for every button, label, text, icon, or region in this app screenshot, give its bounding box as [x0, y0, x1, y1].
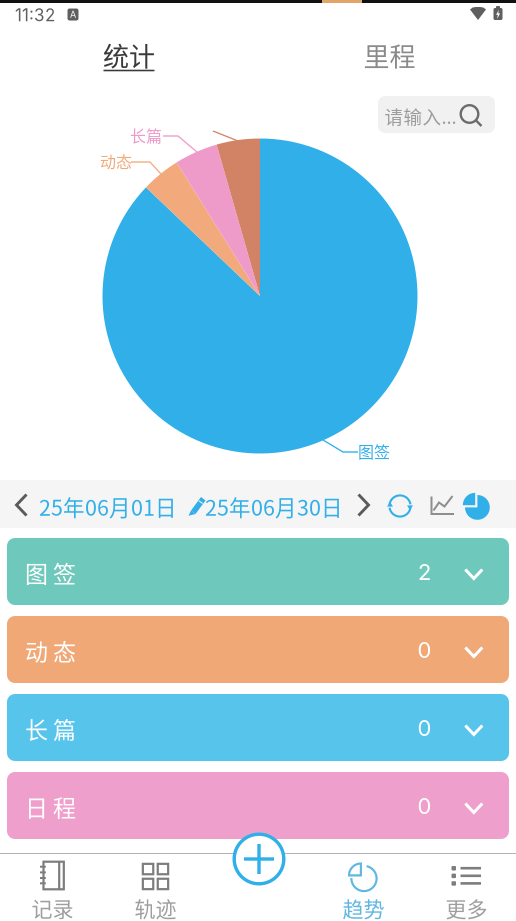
- button[interactable]: 25年06月01日: [39, 491, 177, 522]
- button[interactable]: 轨迹: [104, 853, 207, 921]
- staticText: 轨迹: [134, 892, 176, 921]
- button[interactable]: Pie chart: [464, 494, 490, 520]
- button[interactable]: Next period: [346, 490, 380, 520]
- button[interactable]: 请输入...: [378, 96, 495, 133]
- staticText: 11:32: [15, 5, 55, 25]
- button[interactable]: 统计: [0, 36, 258, 92]
- button[interactable]: 趋势: [312, 853, 415, 921]
- staticText: 0: [417, 715, 431, 741]
- button[interactable]: 更多: [415, 853, 516, 921]
- button[interactable]: Edit date range: [187, 496, 206, 516]
- staticText: 0: [417, 793, 431, 819]
- staticText: 0: [417, 637, 431, 663]
- staticText: 日 程: [25, 790, 76, 823]
- button[interactable]: 日 程: [7, 772, 509, 839]
- button[interactable]: Refresh: [387, 493, 413, 519]
- staticText: 动态: [100, 149, 132, 173]
- staticText: 记录: [31, 892, 73, 921]
- button[interactable]: 长 篇: [7, 694, 509, 761]
- button[interactable]: Add entry: [232, 832, 285, 885]
- staticText: 2: [418, 559, 431, 585]
- staticText: 25年06月30日: [205, 491, 343, 522]
- button[interactable]: 里程: [260, 36, 516, 92]
- button[interactable]: 动 态: [7, 616, 509, 683]
- staticText: 统计: [103, 36, 155, 74]
- staticText: 长篇: [130, 123, 162, 147]
- staticText: 图 签: [25, 556, 76, 589]
- staticText: 趋势: [342, 892, 384, 921]
- staticText: 请输入...: [384, 103, 456, 129]
- staticText: 动 态: [25, 634, 76, 667]
- button[interactable]: Line chart: [430, 494, 455, 515]
- button[interactable]: 25年06月30日: [205, 491, 343, 522]
- staticText: 长 篇: [25, 712, 76, 745]
- button[interactable]: 记录: [1, 853, 104, 921]
- button[interactable]: 图 签: [7, 538, 509, 605]
- button[interactable]: Previous period: [5, 490, 39, 520]
- staticText: 图签: [358, 439, 390, 463]
- staticText: 里程: [363, 36, 415, 74]
- staticText: 25年06月01日: [39, 491, 177, 522]
- staticText: 更多: [445, 892, 487, 921]
- staticText: A: [70, 9, 76, 20]
